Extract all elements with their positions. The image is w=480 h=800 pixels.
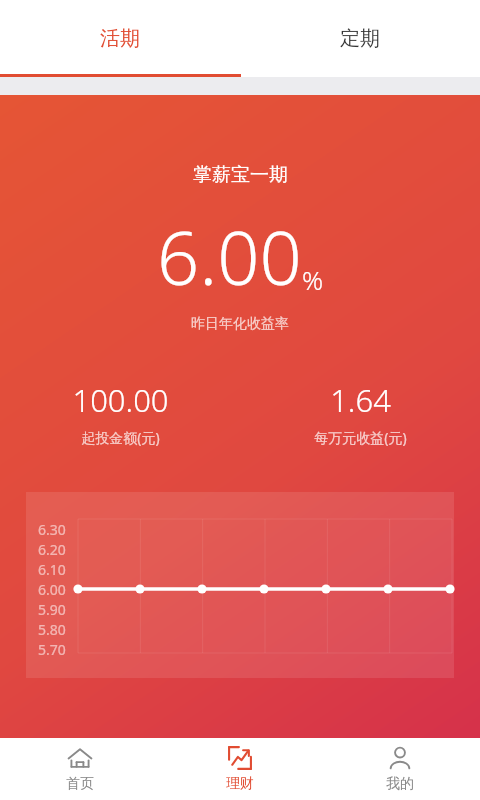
button[interactable]: 我的 [320, 738, 480, 800]
button[interactable]: 理财 [160, 738, 320, 800]
staticText: 6.00 [38, 580, 66, 599]
staticText: % [302, 262, 324, 297]
button[interactable]: 活期 [0, 0, 240, 77]
staticText: 6.20 [38, 540, 66, 559]
other: 我的 [387, 745, 413, 771]
other: 首页 [67, 745, 93, 771]
staticText: 5.70 [38, 640, 66, 659]
staticText: 6.10 [38, 560, 66, 579]
staticText: 定期 [340, 26, 380, 51]
staticText: 6.30 [38, 520, 66, 539]
button[interactable]: 首页 [0, 738, 160, 800]
staticText: 100.00 [72, 379, 169, 421]
button[interactable]: 定期 [240, 0, 480, 77]
staticText: 理财 [226, 775, 254, 793]
staticText: 起投金额(元) [81, 428, 160, 447]
staticText: 5.90 [38, 600, 66, 619]
staticText: 掌薪宝一期 [193, 163, 288, 187]
staticText: 6.00 [157, 206, 302, 307]
staticText: 每万元收益(元) [314, 428, 407, 447]
staticText: 5.80 [38, 620, 66, 639]
staticText: 活期 [100, 26, 140, 51]
staticText: 我的 [386, 775, 414, 793]
staticText: 1.64 [330, 379, 391, 421]
other: 理财 [227, 745, 253, 771]
staticText: 昨日年化收益率 [191, 315, 289, 333]
staticText: 首页 [66, 775, 94, 793]
